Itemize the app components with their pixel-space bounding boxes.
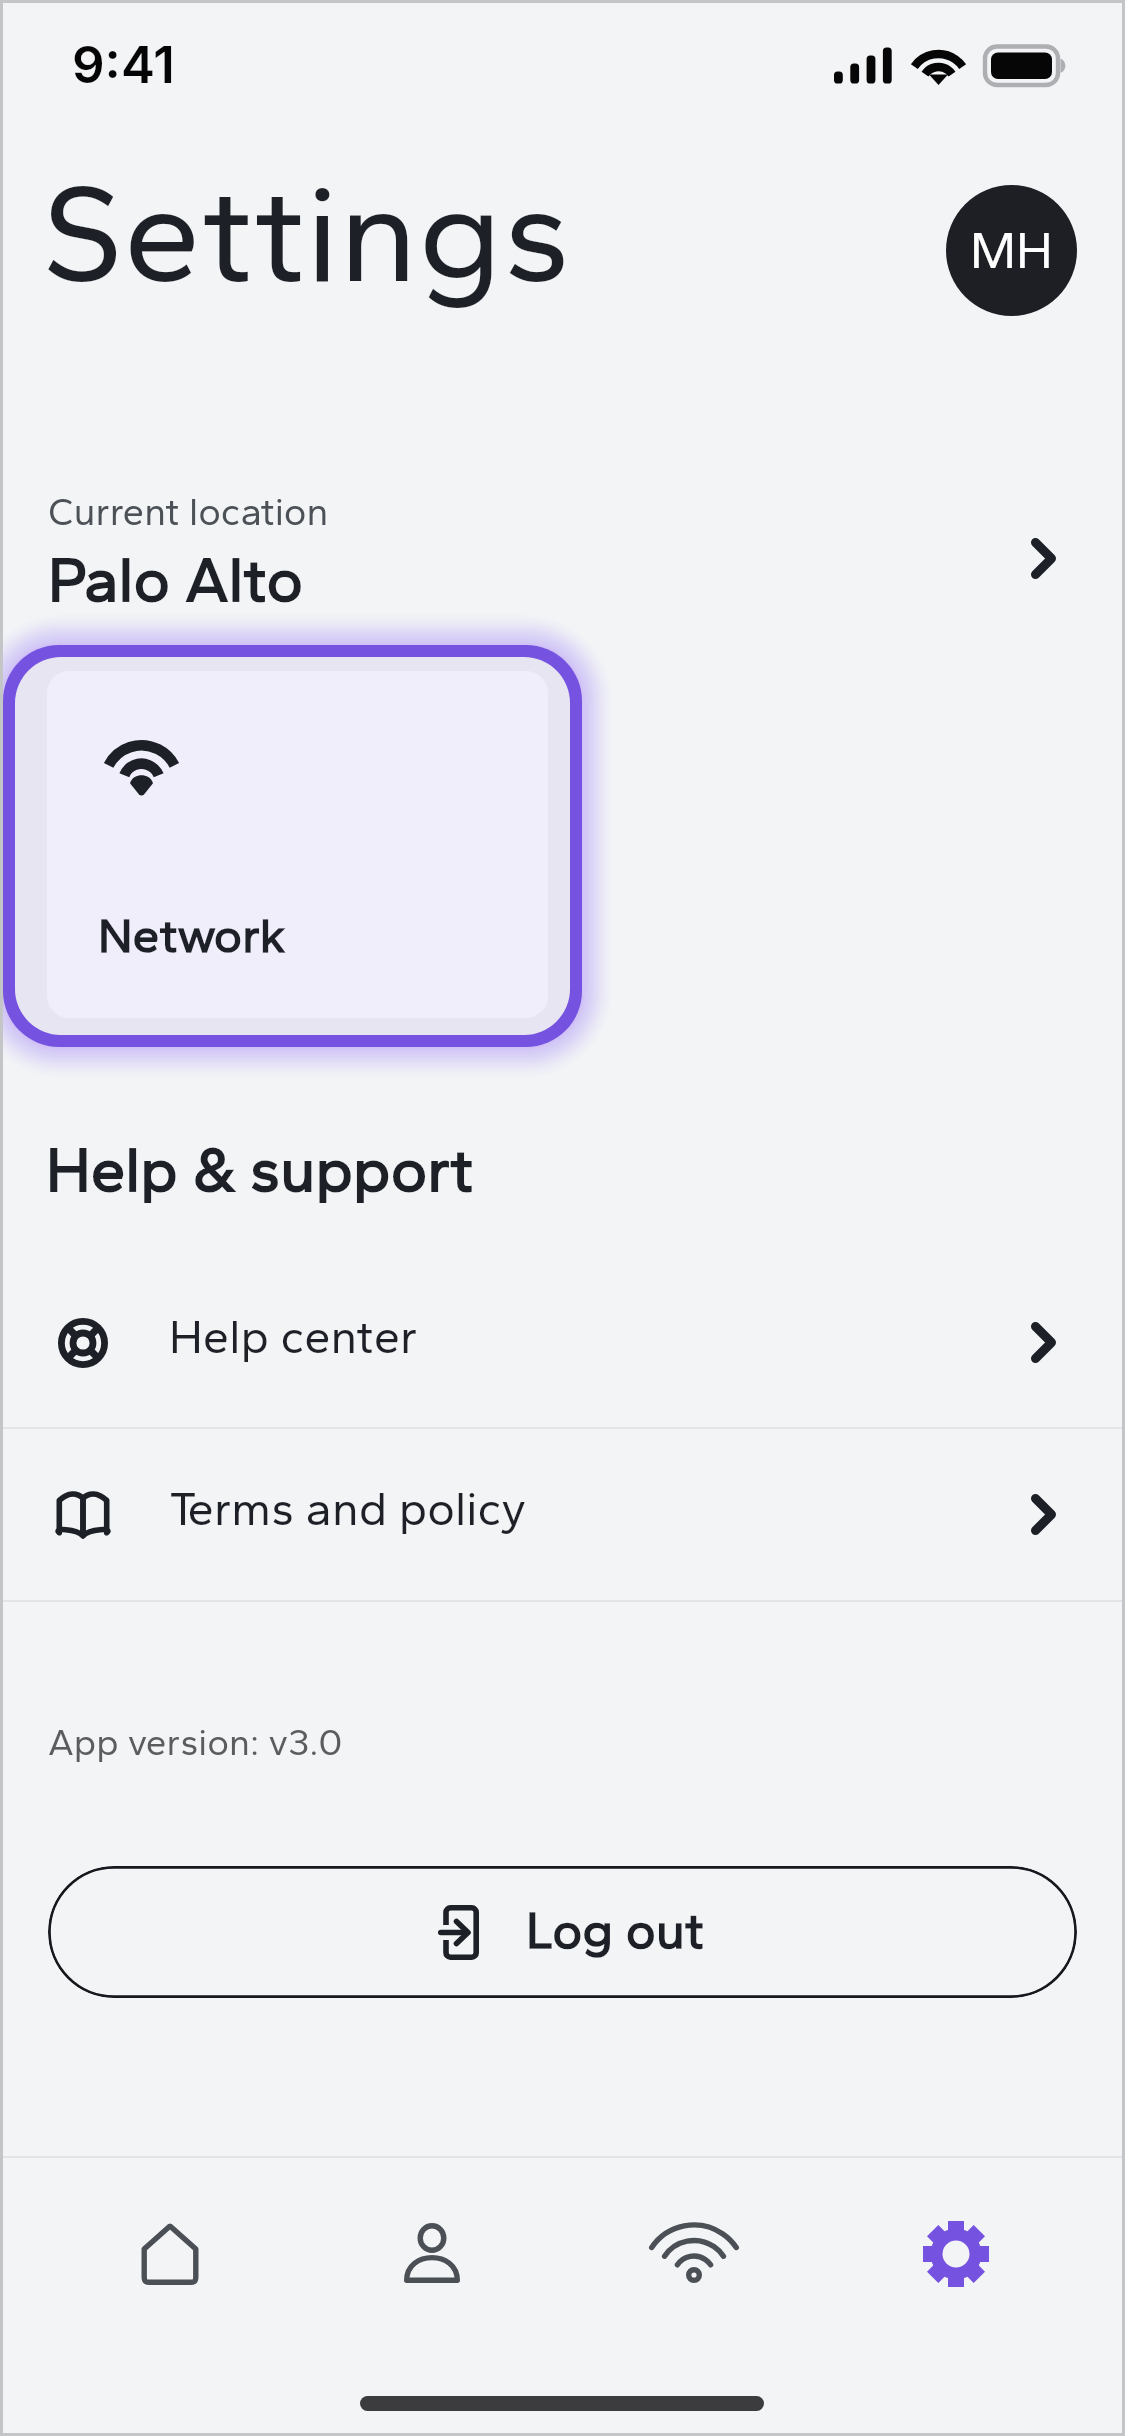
- button[interactable]: Profile: [946, 185, 1077, 316]
- staticText: Help & support: [46, 1132, 474, 1206]
- staticText: Help center: [169, 1308, 418, 1364]
- button[interactable]: Help center: [0, 1257, 1125, 1429]
- button[interactable]: Network: [3, 645, 582, 1047]
- button[interactable]: Network: [563, 2158, 825, 2350]
- staticText: Terms and policy: [169, 1480, 527, 1536]
- staticText: Palo Alto: [48, 542, 304, 616]
- staticText: Settings: [41, 149, 571, 316]
- button[interactable]: Profile: [301, 2158, 563, 2350]
- staticText: Log out: [526, 1900, 704, 1961]
- button[interactable]: Terms and policy: [0, 1429, 1125, 1601]
- staticText: Network: [98, 906, 286, 964]
- button[interactable]: Home: [38, 2158, 301, 2350]
- staticText: App version: v3.0: [48, 1720, 343, 1764]
- staticText: 9:41: [72, 34, 175, 96]
- staticText: Current location: [48, 488, 329, 534]
- button[interactable]: Current location: [0, 470, 1125, 628]
- staticText: MH: [970, 220, 1053, 281]
- button[interactable]: Log out: [48, 1866, 1077, 1998]
- button[interactable]: Settings: [825, 2158, 1087, 2350]
